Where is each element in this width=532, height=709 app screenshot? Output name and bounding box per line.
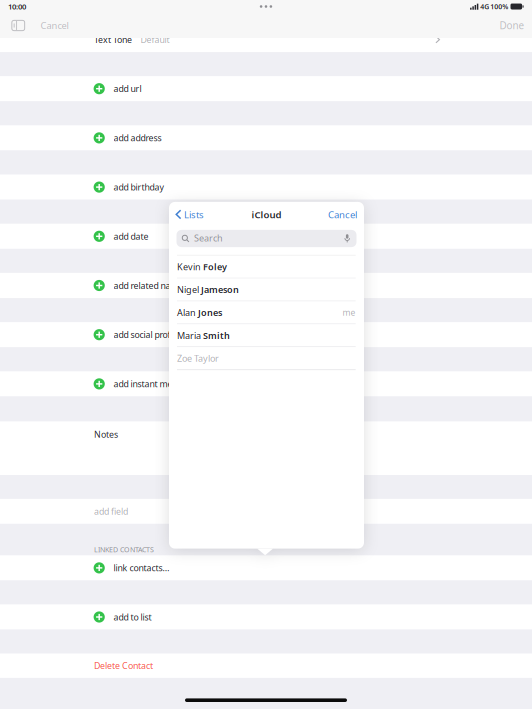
staticText: add birthday	[114, 181, 164, 193]
staticText: link contacts…	[114, 562, 170, 574]
staticText: add social profile	[114, 329, 180, 341]
staticText: iCloud	[251, 208, 281, 221]
button[interactable]: Alan	[169, 301, 364, 324]
staticText: Maria	[177, 329, 203, 341]
button[interactable]: add birthday	[0, 174, 532, 200]
button[interactable]: Show sidebar	[6, 15, 30, 36]
staticText: Default	[141, 34, 170, 46]
button[interactable]: add to list	[0, 604, 532, 630]
staticText: Notes	[94, 428, 118, 440]
button[interactable]: Delete Contact	[0, 653, 532, 678]
staticText: LINKED CONTACTS	[94, 545, 154, 554]
button[interactable]: Maria	[169, 324, 364, 347]
staticText: add instant message	[114, 378, 196, 390]
staticText: Kevin	[177, 260, 203, 273]
staticText: Taylor	[194, 352, 219, 364]
staticText: add to list	[114, 611, 152, 623]
button[interactable]: Cancel	[30, 15, 78, 36]
button[interactable]: Lists	[169, 203, 204, 226]
staticText: 100%	[490, 2, 508, 11]
button[interactable]: Zoe	[169, 347, 364, 370]
staticText: Alan	[177, 306, 198, 319]
staticText: Jones	[198, 306, 222, 319]
staticText: add date	[114, 230, 149, 242]
staticText: add related name	[114, 279, 184, 291]
staticText: Lists	[184, 208, 204, 221]
button[interactable]: Nigel	[169, 278, 364, 301]
staticText: Delete Contact	[94, 660, 153, 672]
button[interactable]: add url	[0, 76, 532, 101]
button[interactable]: add field	[0, 499, 532, 524]
button[interactable]: add address	[0, 125, 532, 150]
button[interactable]: add related name	[0, 273, 532, 298]
button[interactable]: Cancel	[328, 203, 364, 226]
staticText: add address	[114, 132, 162, 144]
staticText: 4G	[480, 2, 489, 11]
button[interactable]: add date	[0, 224, 532, 249]
button[interactable]: add social profile	[0, 322, 532, 347]
button[interactable]: Kevin	[169, 256, 364, 278]
button[interactable]: add instant message	[0, 371, 532, 396]
staticText: Text Tone	[94, 34, 132, 46]
staticText: Jameson	[201, 283, 239, 296]
button[interactable]: Done	[498, 15, 526, 36]
staticText: Cancel	[328, 208, 357, 221]
staticText: Zoe	[177, 352, 194, 364]
staticText: add url	[114, 83, 142, 95]
staticText: Foley	[203, 260, 227, 273]
staticText: add field	[94, 505, 128, 517]
staticText: 10:00	[8, 1, 26, 12]
staticText: Nigel	[177, 283, 201, 296]
staticText: Smith	[203, 329, 230, 341]
staticText: me	[342, 307, 355, 318]
staticText: Cancel	[40, 19, 68, 32]
staticText: Search	[194, 232, 223, 244]
button[interactable]: link contacts…	[0, 555, 532, 580]
staticText: Done	[499, 19, 524, 32]
